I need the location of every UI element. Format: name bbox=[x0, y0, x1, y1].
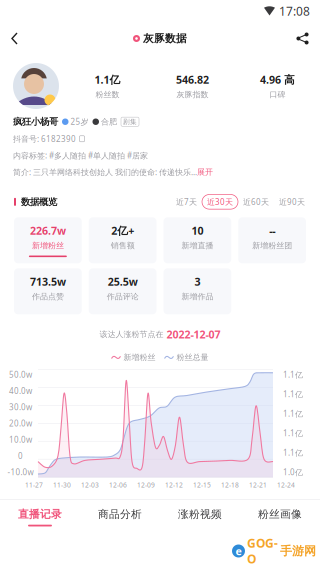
staticText: 3 bbox=[194, 274, 200, 289]
button[interactable]: 25.5w bbox=[89, 268, 157, 314]
staticText: 商品分析 bbox=[98, 507, 142, 521]
staticText: 12-24 bbox=[277, 480, 295, 489]
button[interactable]: -- bbox=[238, 217, 306, 263]
staticText: 10.0w bbox=[9, 434, 32, 445]
staticText: 近30天 bbox=[207, 196, 233, 207]
staticText: 2亿+ bbox=[111, 223, 134, 238]
button[interactable]: 涨粉视频 bbox=[160, 500, 240, 534]
staticText: 口碑 bbox=[269, 90, 285, 99]
button[interactable]: 近30天 bbox=[202, 194, 238, 209]
staticText: 作品评论 bbox=[107, 292, 139, 301]
button[interactable]: 近7天 bbox=[171, 194, 202, 209]
staticText: -10.0w bbox=[7, 467, 33, 477]
staticText: 简介: 三只羊网络科技创始人 我们的使命: 传递快乐... bbox=[13, 167, 197, 177]
staticText: 50.0w bbox=[9, 369, 32, 380]
staticText: 11-30 bbox=[53, 480, 71, 489]
button[interactable]: Share bbox=[282, 24, 320, 53]
staticText: 灰豚数据 bbox=[143, 32, 187, 45]
button[interactable]: 226.7w bbox=[14, 217, 82, 263]
button[interactable]: 近60天 bbox=[238, 194, 274, 209]
staticText: 10 bbox=[191, 223, 203, 238]
button[interactable]: 近90天 bbox=[274, 194, 310, 209]
staticText: 新增直播 bbox=[181, 241, 213, 250]
staticText: 40.0w bbox=[9, 386, 32, 396]
staticText: 1.0亿 bbox=[283, 467, 303, 477]
staticText: 近90天 bbox=[279, 196, 305, 207]
button[interactable]: 粉丝画像 bbox=[240, 500, 320, 534]
staticText: 粉丝画像 bbox=[258, 507, 302, 521]
button[interactable]: Back bbox=[0, 24, 32, 53]
button[interactable]: 商品分析 bbox=[80, 500, 160, 534]
staticText: 手游网 bbox=[280, 544, 316, 558]
staticText: 该达人涨粉节点在 bbox=[99, 329, 163, 339]
staticText: 12-09 bbox=[137, 480, 155, 489]
button[interactable]: 直播记录 bbox=[0, 500, 80, 534]
staticText: 30.0w bbox=[9, 402, 32, 412]
staticText: 合肥 bbox=[101, 117, 117, 127]
staticText: 1.1亿 bbox=[283, 447, 303, 458]
staticText: 粉丝数 bbox=[95, 90, 119, 99]
staticText: 12-03 bbox=[81, 480, 99, 489]
staticText: 1.1亿 bbox=[283, 389, 303, 399]
button[interactable]: 2亿+ bbox=[89, 217, 157, 263]
staticText: 剧集 bbox=[123, 118, 137, 126]
staticText: 抖音号: 6182390 bbox=[13, 133, 76, 144]
staticText: 展开 bbox=[197, 167, 213, 177]
button[interactable]: 3 bbox=[163, 268, 231, 314]
staticText: 25岁 bbox=[70, 116, 88, 127]
button[interactable]: 10 bbox=[163, 217, 231, 263]
staticText: 1.1亿 bbox=[283, 428, 303, 438]
staticText: 近7天 bbox=[176, 196, 197, 207]
staticText: 1.1亿 bbox=[283, 408, 303, 419]
staticText: e bbox=[235, 544, 241, 558]
staticText: 12-06 bbox=[109, 480, 127, 489]
staticText: 12-12 bbox=[165, 480, 183, 489]
staticText: 17:08 bbox=[279, 3, 310, 19]
staticText: 2022-12-07 bbox=[166, 327, 220, 341]
button[interactable]: 展开 bbox=[197, 167, 213, 177]
staticText: 数据概览 bbox=[21, 196, 57, 208]
staticText: 新增粉丝团 bbox=[252, 241, 292, 250]
staticText: 新增作品 bbox=[181, 292, 213, 301]
staticText: 20.0w bbox=[9, 418, 32, 429]
staticText: 1.1亿 bbox=[283, 369, 303, 380]
staticText: 25.5w bbox=[108, 274, 138, 289]
staticText: 546.82 bbox=[176, 72, 209, 87]
staticText: 713.5w bbox=[30, 274, 66, 289]
staticText: GOGO bbox=[247, 535, 278, 567]
button[interactable]: 713.5w bbox=[14, 268, 82, 314]
staticText: 近60天 bbox=[243, 196, 269, 207]
staticText: 销售额 bbox=[111, 241, 135, 250]
staticText: 1.1亿 bbox=[94, 72, 120, 87]
staticText: 新增粉丝 bbox=[123, 352, 155, 362]
staticText: 12-18 bbox=[221, 480, 239, 489]
staticText: 作品点赞 bbox=[32, 292, 64, 301]
staticText: 4.96 高 bbox=[260, 72, 295, 87]
staticText: 226.7w bbox=[30, 223, 66, 238]
staticText: 内容标签: #多人随拍 #单人随拍 #居家 bbox=[13, 150, 148, 161]
staticText: 涨粉视频 bbox=[178, 507, 222, 521]
staticText: 0 bbox=[18, 451, 23, 461]
staticText: 新增粉丝 bbox=[32, 241, 64, 250]
staticText: 11-27 bbox=[25, 480, 43, 489]
staticText: 12-15 bbox=[193, 480, 211, 489]
staticText: 灰豚指数 bbox=[176, 90, 208, 99]
staticText: -- bbox=[269, 223, 275, 238]
staticText: 12-21 bbox=[249, 480, 267, 489]
staticText: 直播记录 bbox=[18, 507, 62, 521]
staticText: 粉丝总量 bbox=[176, 352, 208, 362]
staticText: 疯狂小杨哥 bbox=[13, 116, 58, 127]
